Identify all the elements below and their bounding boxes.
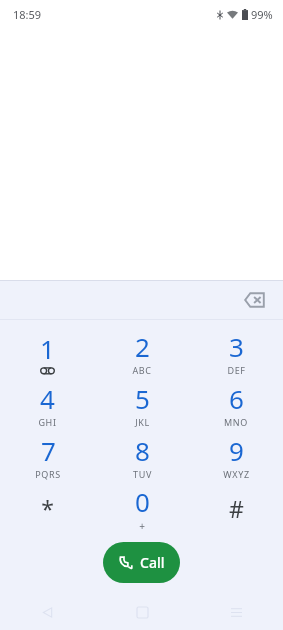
staticText: 8: [135, 433, 150, 468]
button[interactable]: 5: [95, 378, 189, 430]
staticText: TUV: [133, 468, 152, 480]
staticText: ABC: [132, 364, 152, 376]
button[interactable]: Backspace: [237, 283, 271, 317]
staticText: 9: [229, 433, 244, 468]
staticText: GHI: [38, 416, 57, 428]
staticText: 18:59: [13, 7, 42, 22]
button[interactable]: 1: [0, 326, 95, 378]
button[interactable]: 3: [189, 326, 283, 378]
staticText: MNO: [224, 416, 248, 428]
button[interactable]: 4: [0, 378, 95, 430]
staticText: 6: [229, 381, 244, 416]
button[interactable]: 8: [95, 430, 189, 482]
staticText: WXYZ: [223, 468, 250, 480]
button[interactable]: 7: [0, 430, 95, 482]
staticText: 7: [41, 433, 56, 468]
staticText: JKL: [135, 416, 150, 428]
staticText: 3: [229, 329, 244, 364]
staticText: 0: [135, 484, 150, 519]
button[interactable]: *: [0, 482, 95, 534]
staticText: PQRS: [35, 468, 61, 480]
staticText: 5: [135, 381, 150, 416]
staticText: #: [229, 493, 244, 524]
staticText: *: [41, 493, 54, 524]
staticText: 99%: [251, 7, 273, 22]
button[interactable]: 0: [95, 482, 189, 534]
button[interactable]: #: [189, 482, 283, 534]
button[interactable]: 9: [189, 430, 283, 482]
staticText: 2: [135, 329, 150, 364]
button[interactable]: 2: [95, 326, 189, 378]
staticText: Call: [140, 553, 165, 572]
staticText: 1: [40, 331, 55, 366]
staticText: DEF: [227, 364, 246, 376]
button[interactable]: 6: [189, 378, 283, 430]
staticText: +: [139, 519, 146, 533]
staticText: 4: [40, 381, 55, 416]
button[interactable]: Call: [103, 542, 180, 583]
